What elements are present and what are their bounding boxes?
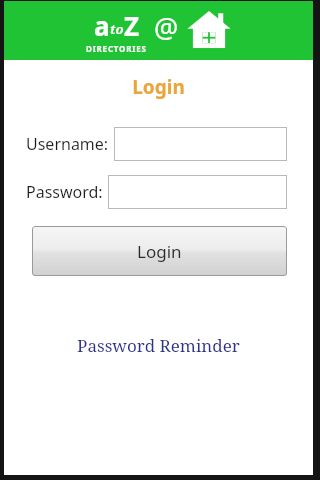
staticText: Z [124,8,140,43]
other: Home [186,8,232,52]
staticText: to [110,20,124,38]
staticText: DIRECTORIES [86,43,147,54]
staticText: Username: [26,133,109,155]
button[interactable] [114,127,287,161]
staticText: Login [4,74,313,100]
button[interactable] [108,175,287,209]
staticText: Password Reminder [77,334,240,357]
button[interactable]: Password Reminder [4,334,313,357]
button[interactable]: Login [32,226,287,276]
staticText: Password: [26,181,103,203]
staticText: a [94,8,110,43]
staticText: Login [137,240,182,263]
staticText: @ [154,9,179,46]
